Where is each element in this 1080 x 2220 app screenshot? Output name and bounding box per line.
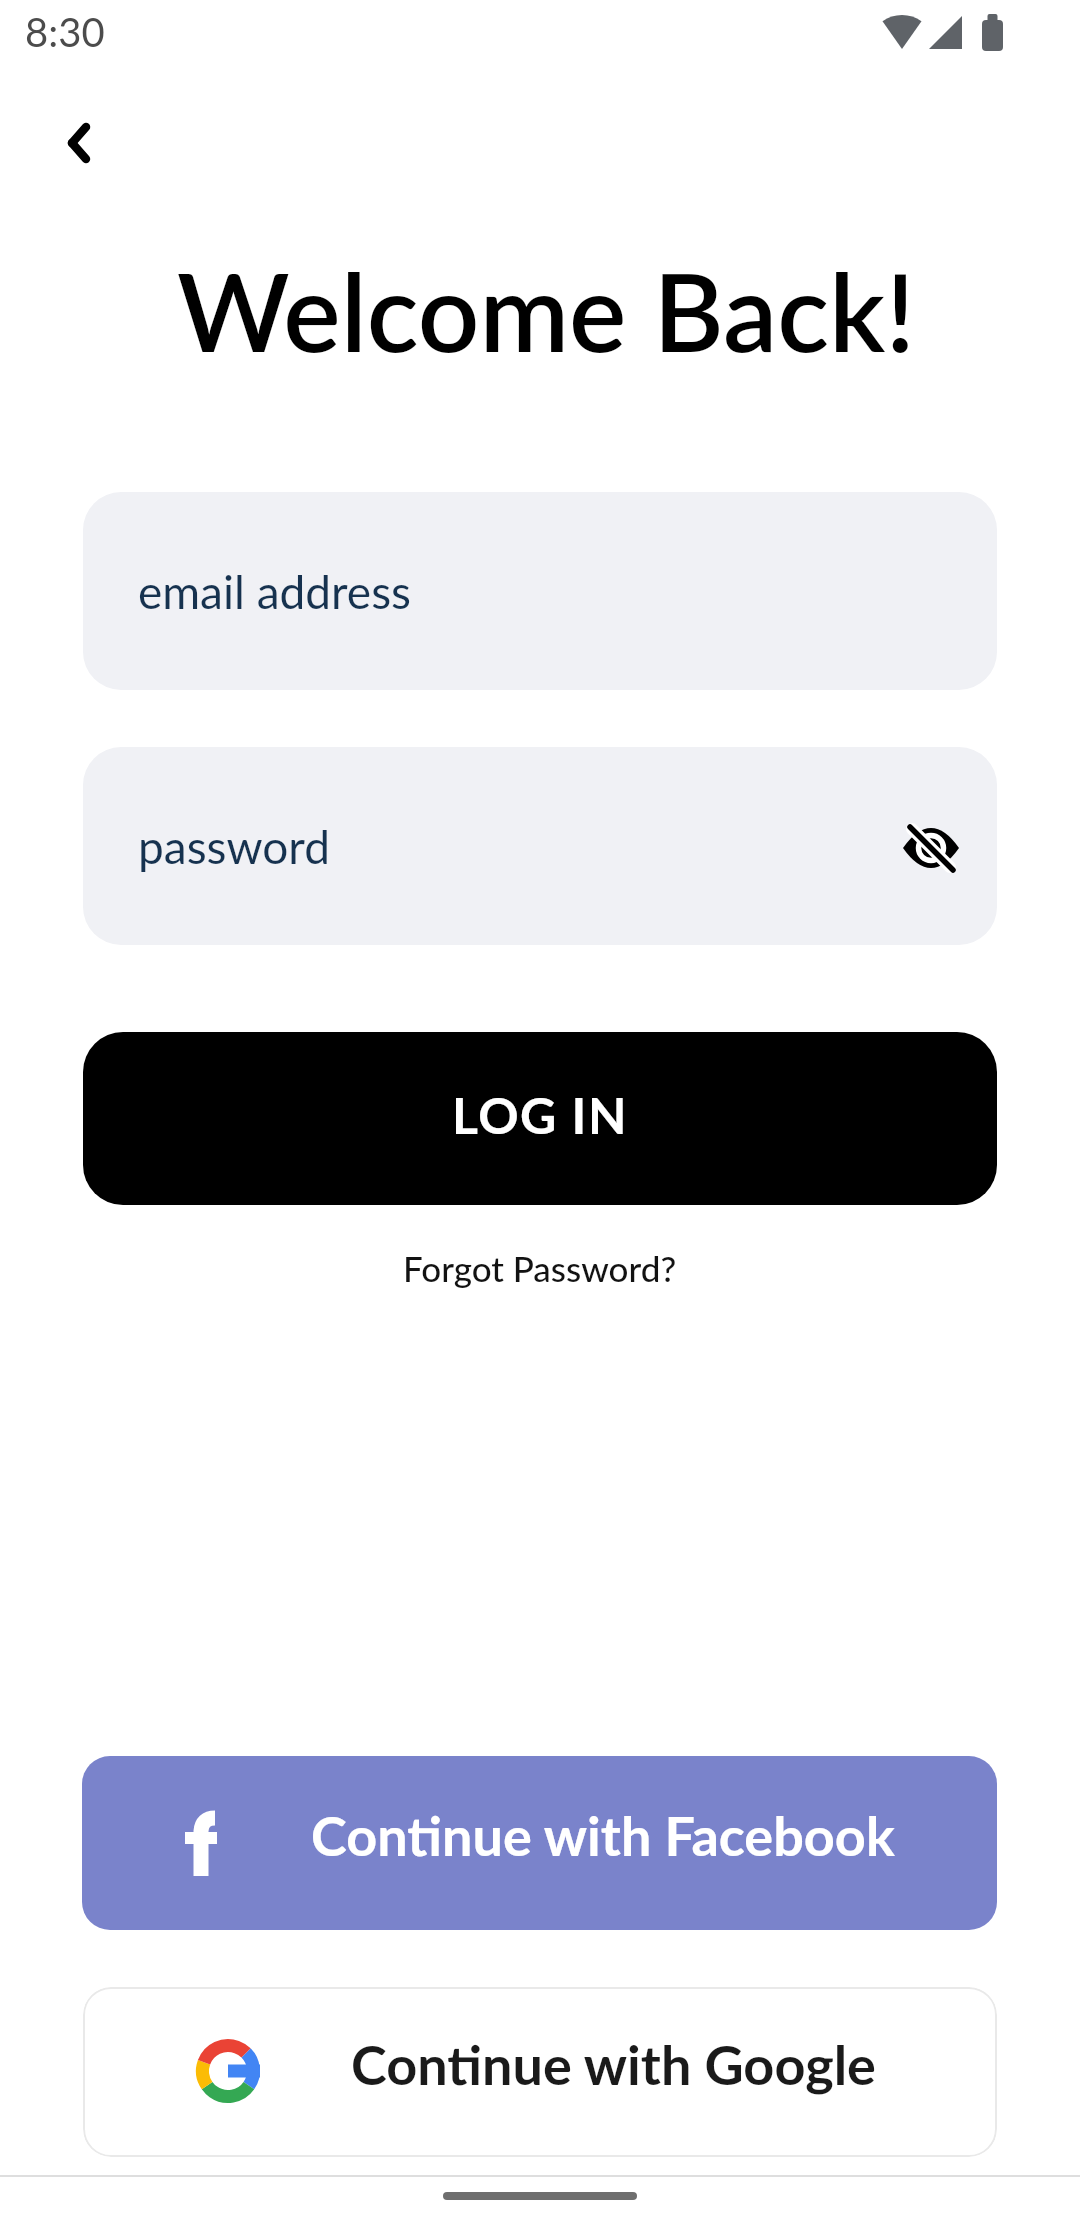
button[interactable]: Forgot Password? — [0, 1230, 1080, 1306]
staticText: email address — [138, 564, 411, 619]
button[interactable]: email address — [83, 492, 997, 690]
staticText: Welcome Back! — [177, 245, 916, 375]
button[interactable] — [901, 820, 961, 876]
button[interactable]: password — [83, 747, 997, 945]
staticText: LOG IN — [452, 1085, 628, 1145]
staticText: password — [138, 819, 330, 874]
button[interactable]: Continue with Google — [83, 1987, 997, 2157]
button[interactable] — [40, 105, 115, 180]
button[interactable]: Continue with Facebook — [82, 1756, 997, 1930]
staticText: 8:30 — [25, 8, 105, 56]
staticText: Continue with Google — [351, 2032, 876, 2097]
staticText: Continue with Facebook — [311, 1803, 895, 1868]
staticText: Forgot Password? — [403, 1247, 677, 1289]
button[interactable]: LOG IN — [83, 1032, 997, 1205]
